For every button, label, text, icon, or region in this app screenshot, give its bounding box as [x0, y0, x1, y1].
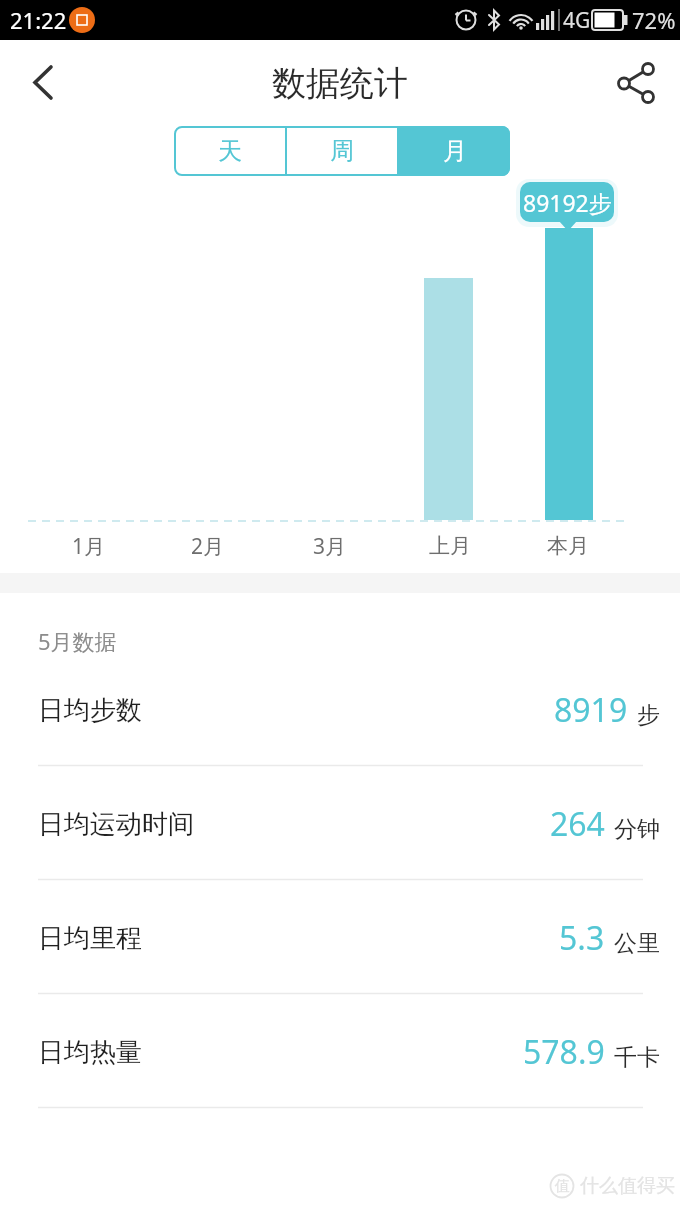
staticText: 上月 [429, 533, 471, 559]
staticText: 5月数据 [38, 626, 117, 656]
button[interactable] [604, 55, 666, 111]
staticText: 日均热量 [38, 1036, 142, 1069]
button[interactable]: 日均步数 [0, 653, 680, 767]
staticText: 日均运动时间 [38, 808, 194, 841]
button[interactable]: 日均运动时间 [0, 767, 680, 881]
staticText: 72% [632, 5, 676, 35]
staticText: 3月 [313, 532, 347, 561]
button[interactable] [14, 55, 74, 111]
staticText: 2月 [191, 532, 225, 561]
staticText: 8919 [554, 688, 628, 732]
staticText: 月 [443, 136, 467, 166]
button[interactable]: 日均里程 [0, 881, 680, 995]
staticText: 天 [218, 136, 242, 166]
staticText: 578.9 [523, 1030, 605, 1074]
staticText: 1月 [72, 532, 106, 561]
staticText: 千卡 [614, 1043, 660, 1072]
button[interactable]: 月 [399, 126, 510, 176]
staticText: 数据统计 [272, 62, 408, 105]
staticText: 21:22 [10, 5, 67, 35]
button[interactable]: 天 [174, 126, 285, 176]
staticText: 本月 [547, 533, 589, 559]
staticText: 公里 [614, 929, 660, 958]
staticText: 什么值得买 [580, 1174, 675, 1198]
staticText: 日均里程 [38, 922, 142, 955]
staticText: 分钟 [614, 815, 660, 844]
staticText: 4G [563, 6, 591, 35]
staticText: 264 [550, 802, 605, 846]
staticText: 步 [637, 701, 660, 730]
staticText: 周 [330, 136, 354, 166]
staticText: 值 [555, 1177, 570, 1196]
button[interactable]: 日均热量 [0, 995, 680, 1109]
staticText: 89192步 [523, 187, 612, 218]
staticText: 日均步数 [38, 694, 142, 727]
button[interactable]: 周 [287, 126, 397, 176]
staticText: 5.3 [559, 916, 605, 960]
